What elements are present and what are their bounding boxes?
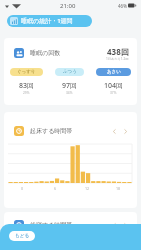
staticText: 21:00: [60, 2, 76, 10]
staticText: 438回: [107, 46, 129, 57]
button[interactable]: Previous week: [109, 126, 120, 137]
button[interactable]: Next week: [120, 220, 131, 231]
staticText: 就寝する時間帯: [30, 221, 73, 229]
button[interactable]: もどる: [9, 231, 35, 241]
staticText: 29%: [23, 91, 30, 95]
button[interactable]: ふつう: [55, 68, 84, 76]
staticText: ぐっすり: [17, 69, 36, 75]
staticText: もどる: [15, 233, 30, 239]
button[interactable]: 睡眠の統計・1週間: [7, 15, 92, 27]
button[interactable]: Next week: [120, 126, 131, 137]
staticText: 起床する時間帯: [30, 127, 73, 135]
button[interactable]: 就寝する時間帯: [4, 212, 137, 242]
button[interactable]: ぐっすり: [10, 68, 43, 76]
staticText: 34%: [66, 91, 73, 95]
staticText: 46%: [118, 3, 127, 9]
staticText: 睡眠の統計・1週間: [21, 17, 73, 25]
button[interactable]: Previous week: [109, 220, 120, 231]
staticText: 12: [85, 186, 90, 191]
staticText: 83回: [19, 81, 35, 91]
staticText: 6: [54, 186, 57, 191]
staticText: 97回: [62, 81, 78, 91]
staticText: 18: [116, 186, 121, 191]
staticText: 1日あたり1.2回: [106, 57, 129, 61]
button[interactable]: あさい: [96, 68, 131, 76]
staticText: 睡眠の回数: [30, 49, 61, 57]
staticText: 37%: [110, 91, 117, 95]
staticText: ふつう: [63, 69, 77, 75]
staticText: あさい: [107, 69, 121, 75]
staticText: 104回: [104, 81, 124, 91]
staticText: 0: [21, 186, 24, 191]
